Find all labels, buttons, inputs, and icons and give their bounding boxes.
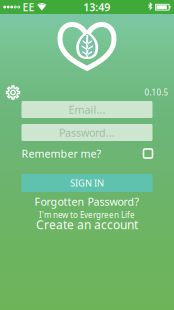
staticText: Remember me? bbox=[21, 146, 101, 161]
staticText: 13:49 bbox=[83, 0, 110, 14]
staticText: Password... bbox=[59, 125, 115, 140]
staticText: Email... bbox=[68, 102, 105, 117]
staticText: EE bbox=[22, 0, 34, 14]
button[interactable]: Settings bbox=[5, 85, 20, 100]
button[interactable]: Forgotten Password? bbox=[21, 195, 152, 208]
button[interactable]: Remember me? bbox=[21, 147, 152, 160]
staticText: 0.10.5 bbox=[144, 87, 168, 98]
staticText: I'm new to Evergreen Life bbox=[39, 210, 135, 220]
staticText: SIGN IN bbox=[70, 177, 104, 189]
button[interactable]: I'm new to Evergreen Life bbox=[21, 211, 152, 230]
staticText: Forgotten Password? bbox=[34, 194, 139, 209]
button[interactable]: SIGN IN bbox=[21, 174, 152, 192]
staticText: Create an account bbox=[36, 216, 138, 232]
